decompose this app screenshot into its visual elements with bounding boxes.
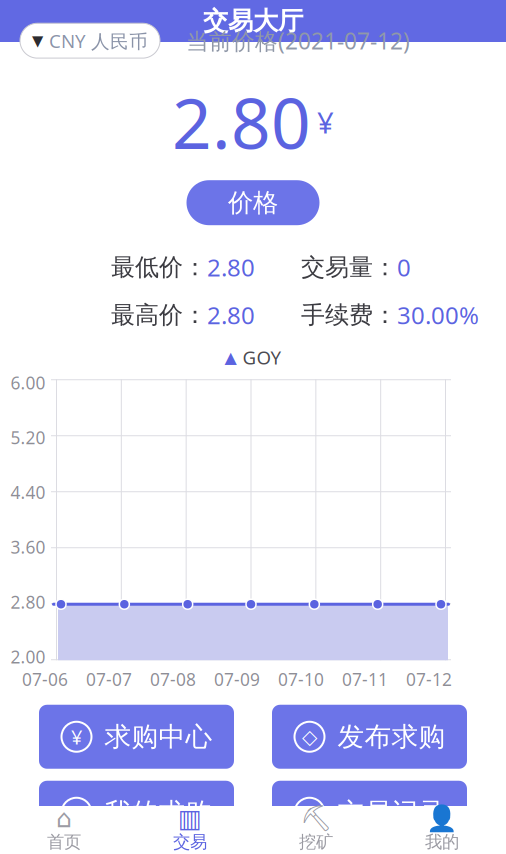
staticText: 07-12 [406, 668, 452, 691]
button[interactable]: 👤 [379, 806, 505, 854]
staticText: 首页 [47, 831, 81, 853]
staticText: ▼ [32, 32, 43, 49]
staticText: 我的 [425, 831, 459, 853]
staticText: 6.00 [10, 371, 45, 394]
button[interactable]: ◇ [272, 705, 467, 769]
staticText: 交易 [173, 831, 207, 853]
staticText: 07-07 [86, 668, 132, 691]
staticText: ▲ [224, 348, 236, 366]
button[interactable]: ▼ [20, 23, 160, 58]
staticText: 发布求购 [337, 720, 445, 753]
staticText: 4.40 [10, 481, 45, 504]
staticText: 2.80 [207, 251, 255, 283]
staticText: 07-06 [22, 668, 68, 691]
staticText: 2.00 [10, 645, 45, 668]
staticText: 价格 [228, 187, 278, 218]
staticText: 交易大厅 [203, 5, 303, 36]
staticText: ⌂ [56, 804, 72, 833]
staticText: 我的求购 [104, 796, 212, 829]
staticText: ⛏ [300, 804, 332, 833]
staticText: 5.20 [10, 426, 45, 449]
staticText: GOY [242, 345, 281, 370]
staticText: 👤 [426, 804, 458, 833]
staticText: CNY 人民币 [49, 28, 148, 53]
staticText: 30.00% [397, 299, 479, 331]
staticText: 当前价格(2021-07-12) [186, 26, 410, 56]
staticText: ¥ [317, 103, 334, 142]
staticText: 交易量： [301, 252, 397, 282]
button[interactable]: 价格 [186, 180, 319, 225]
staticText: ¥ [71, 799, 82, 826]
staticText: ▥ [178, 804, 202, 833]
button[interactable]: ◇ [272, 781, 467, 845]
staticText: 07-08 [150, 668, 196, 691]
button[interactable]: ▥ [127, 806, 253, 854]
staticText: 挖矿 [299, 831, 333, 853]
staticText: 2.80 [10, 590, 45, 613]
staticText: 交易记录 [337, 796, 445, 829]
staticText: ◇ [302, 801, 317, 824]
staticText: 最低价： [111, 252, 207, 282]
staticText: 0 [397, 251, 411, 283]
staticText: ¥ [71, 723, 82, 750]
staticText: 07-11 [342, 668, 388, 691]
staticText: 2.80 [172, 76, 311, 168]
button[interactable]: ⌂ [1, 806, 127, 854]
staticText: 07-09 [214, 668, 260, 691]
button[interactable]: ¥ [39, 781, 234, 845]
staticText: 2.80 [207, 299, 255, 331]
staticText: 求购中心 [104, 720, 212, 753]
staticText: ◇ [302, 725, 317, 748]
button[interactable]: ¥ [39, 705, 234, 769]
staticText: 最高价： [111, 300, 207, 330]
staticText: 3.60 [10, 536, 45, 559]
staticText: 07-10 [278, 668, 324, 691]
button[interactable]: ⛏ [253, 806, 379, 854]
staticText: 手续费： [301, 300, 397, 330]
